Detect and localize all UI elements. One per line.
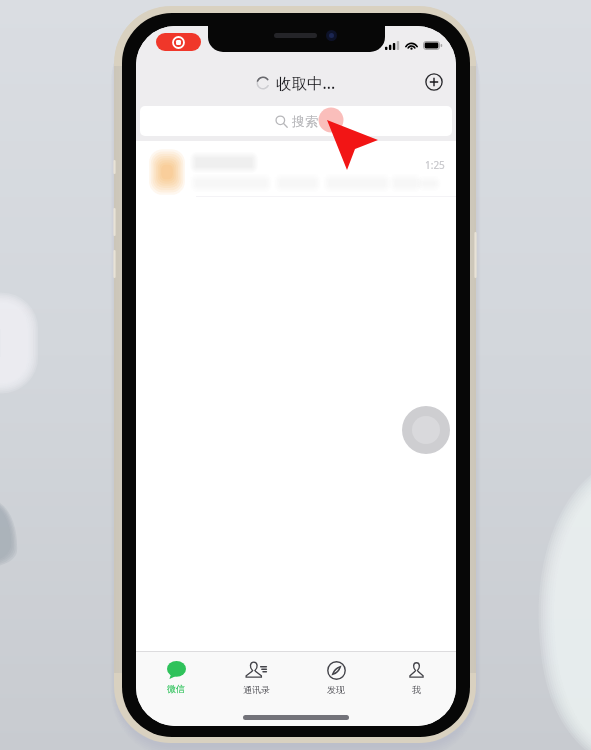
staticText: 收取中... <box>276 72 336 93</box>
button[interactable]: 搜索 <box>140 106 452 136</box>
button[interactable]: 我 <box>376 652 456 701</box>
staticText: 通讯录 <box>243 684 270 695</box>
button[interactable]: 微信 <box>136 652 216 701</box>
button[interactable]: AssistiveTouch <box>402 406 450 454</box>
button[interactable]: Add <box>419 67 449 97</box>
staticText: 发现 <box>327 684 345 695</box>
button[interactable]: 1:25 <box>136 141 456 197</box>
button[interactable]: 发现 <box>296 652 376 701</box>
staticText: 微信 <box>167 683 185 694</box>
button[interactable]: 通讯录 <box>216 652 296 701</box>
staticText: 搜索 <box>292 113 318 129</box>
staticText: 我 <box>412 684 421 695</box>
staticText: 1:25 <box>425 158 445 172</box>
